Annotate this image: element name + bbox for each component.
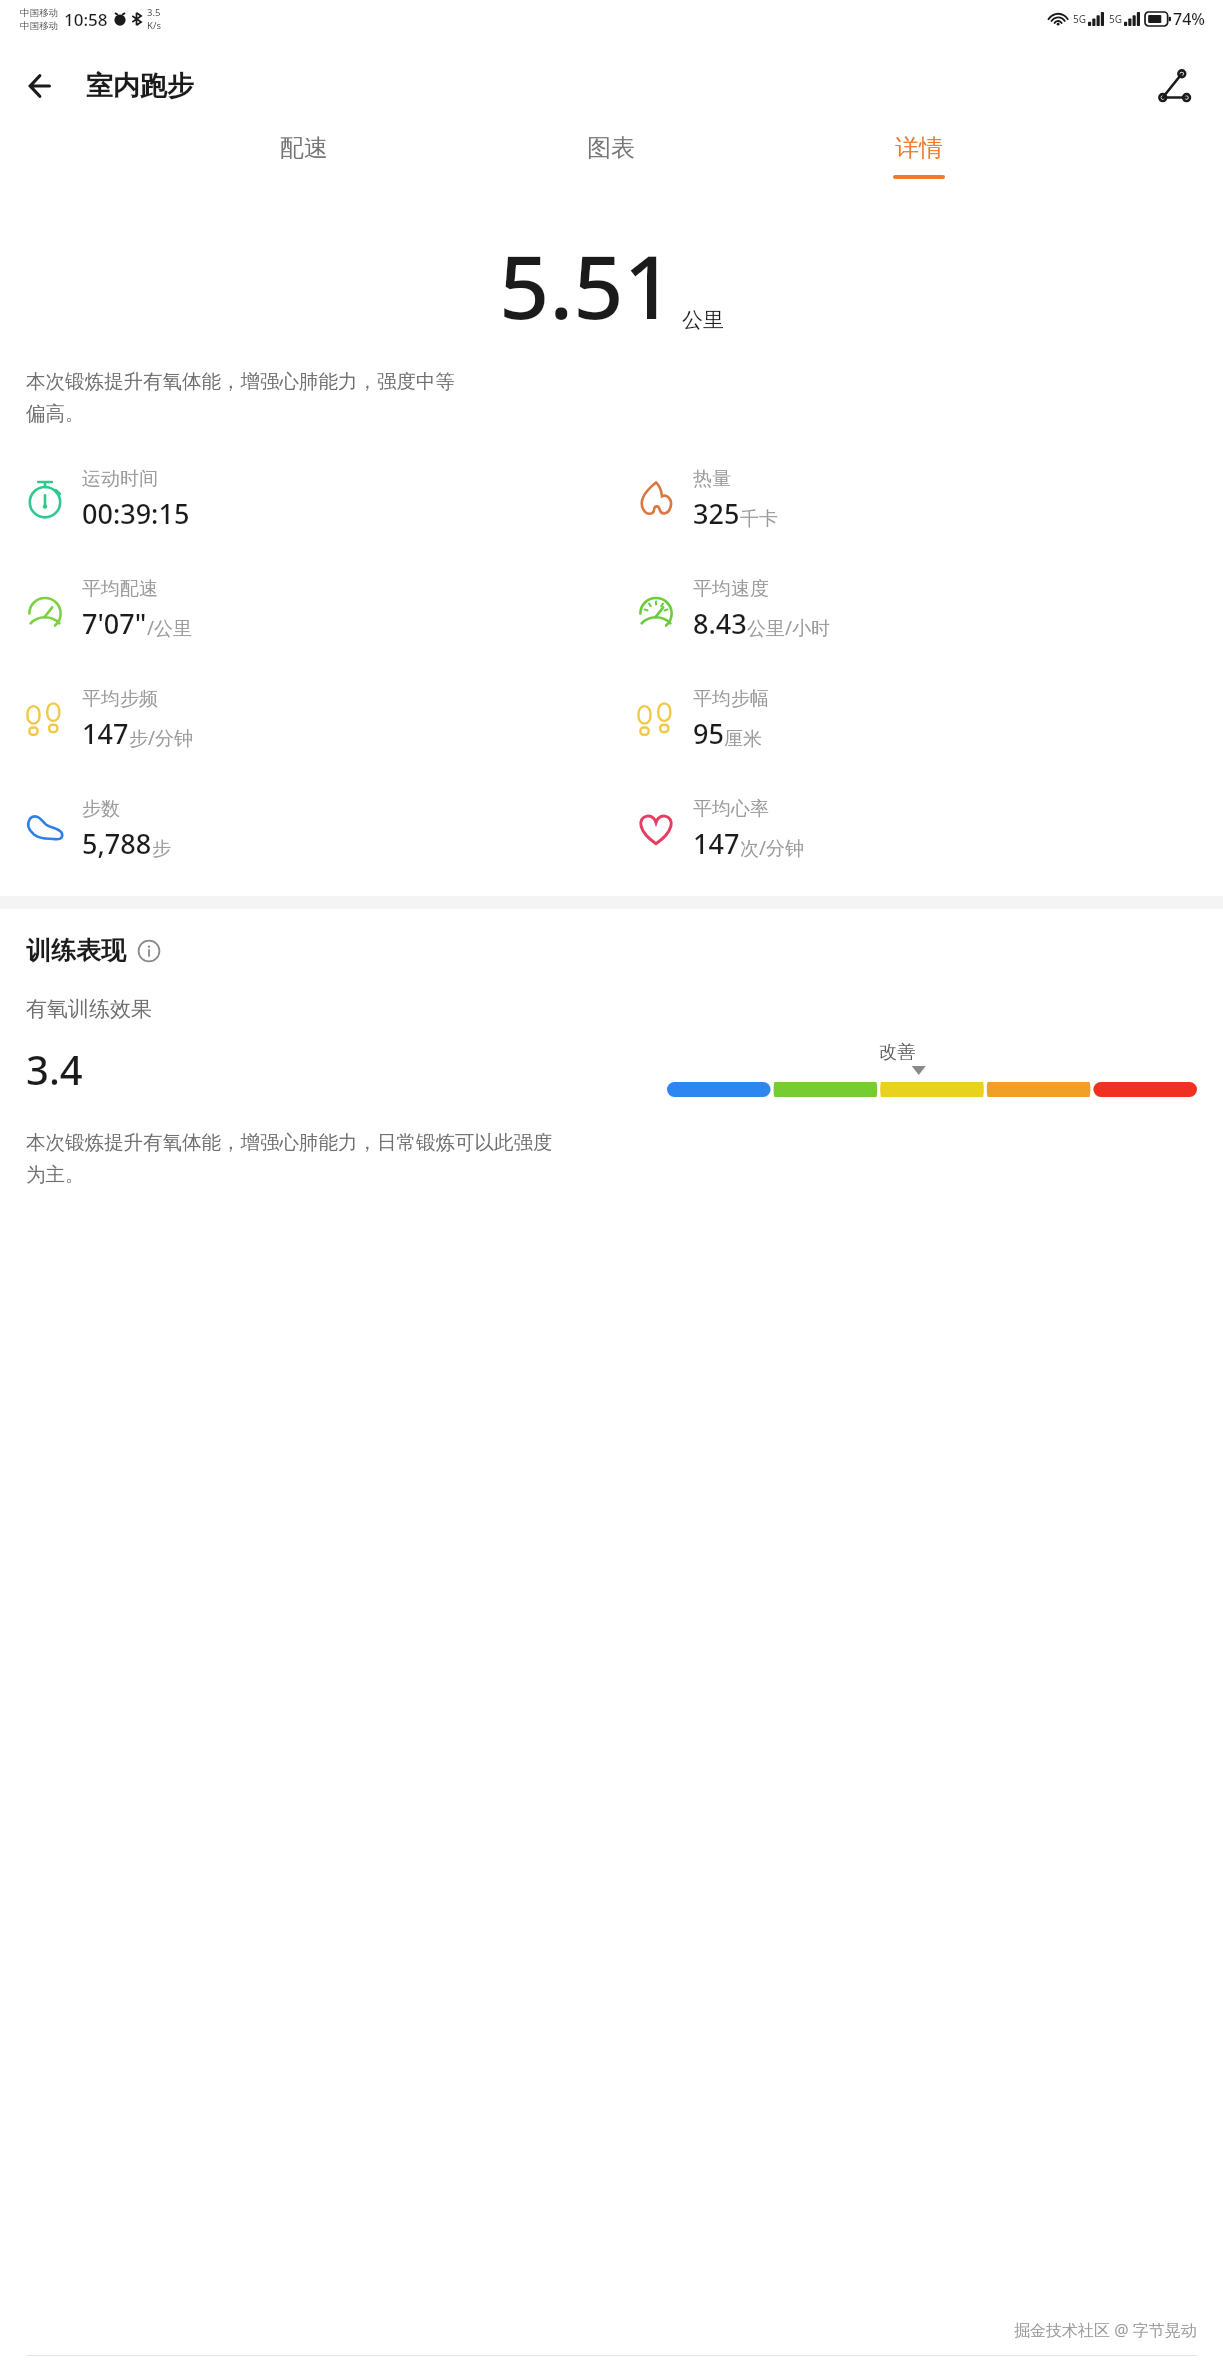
staticText: 改善 xyxy=(879,1041,915,1064)
button[interactable]: 图表 xyxy=(457,133,765,205)
staticText: 步 xyxy=(152,837,171,861)
staticText: 平均心率 xyxy=(693,797,769,821)
button[interactable]: 详情 xyxy=(765,133,1073,205)
staticText: 本次锻炼提升有氧体能，增强心肺能力，强度中等 偏高。 xyxy=(26,369,455,426)
button[interactable]: 热量 xyxy=(633,444,1223,554)
staticText: 5.51 xyxy=(499,225,674,345)
button[interactable]: Info xyxy=(136,938,162,964)
staticText: 有氧训练效果 xyxy=(26,996,152,1022)
staticText: K/s xyxy=(147,19,161,32)
staticText: 5G xyxy=(1073,12,1086,26)
staticText: 5G xyxy=(1109,12,1122,26)
staticText: 8.43 xyxy=(693,605,747,642)
staticText: 详情 xyxy=(895,133,943,163)
staticText: 平均步幅 xyxy=(693,687,769,711)
button[interactable]: Back xyxy=(14,57,72,115)
staticText: 147 xyxy=(82,715,129,752)
staticText: 训练表现 xyxy=(26,935,126,966)
staticText: 3.5 xyxy=(147,6,161,19)
button[interactable]: 平均配速 xyxy=(22,554,611,664)
staticText: 公里/小时 xyxy=(747,615,831,641)
staticText: 公里 xyxy=(682,307,724,333)
staticText: 厘米 xyxy=(724,727,762,751)
button[interactable]: 平均步频 xyxy=(22,664,611,774)
button[interactable]: 平均步幅 xyxy=(633,664,1223,774)
staticText: 5,788 xyxy=(82,825,152,862)
staticText: 平均速度 xyxy=(693,577,769,601)
staticText: /公里 xyxy=(147,615,193,641)
staticText: 配速 xyxy=(280,133,328,163)
staticText: 本次锻炼提升有氧体能，增强心肺能力，日常锻炼可以此强度 为主。 xyxy=(26,1130,553,1187)
staticText: 次/分钟 xyxy=(740,835,805,861)
button[interactable]: 平均速度 xyxy=(633,554,1223,664)
button[interactable]: Share xyxy=(1145,56,1205,116)
staticText: 千卡 xyxy=(740,507,778,531)
staticText: 平均配速 xyxy=(82,577,158,601)
staticText: 平均步频 xyxy=(82,687,158,711)
staticText: 95 xyxy=(693,715,724,752)
staticText: 325 xyxy=(693,495,740,532)
button[interactable]: 平均心率 xyxy=(633,774,1223,884)
staticText: 运动时间 xyxy=(82,467,158,491)
staticText: 10:58 xyxy=(64,8,108,31)
staticText: 步数 xyxy=(82,797,120,821)
staticText: 室内跑步 xyxy=(86,69,194,103)
staticText: 图表 xyxy=(587,133,635,163)
button[interactable]: 运动时间 xyxy=(22,444,611,554)
staticText: 热量 xyxy=(693,467,731,491)
staticText: 00:39:15 xyxy=(82,495,190,532)
staticText: 147 xyxy=(693,825,740,862)
button[interactable]: 步数 xyxy=(22,774,611,884)
staticText: 7'07" xyxy=(82,605,147,642)
button[interactable]: 配速 xyxy=(150,133,457,205)
staticText: 中国移动 xyxy=(20,7,58,19)
staticText: 74% xyxy=(1173,8,1205,30)
staticText: 3.4 xyxy=(26,1042,83,1096)
staticText: 掘金技术社区 @ 字节晃动 xyxy=(1014,2319,1197,2341)
staticText: 中国移动 xyxy=(20,20,58,32)
staticText: 步/分钟 xyxy=(129,725,194,751)
